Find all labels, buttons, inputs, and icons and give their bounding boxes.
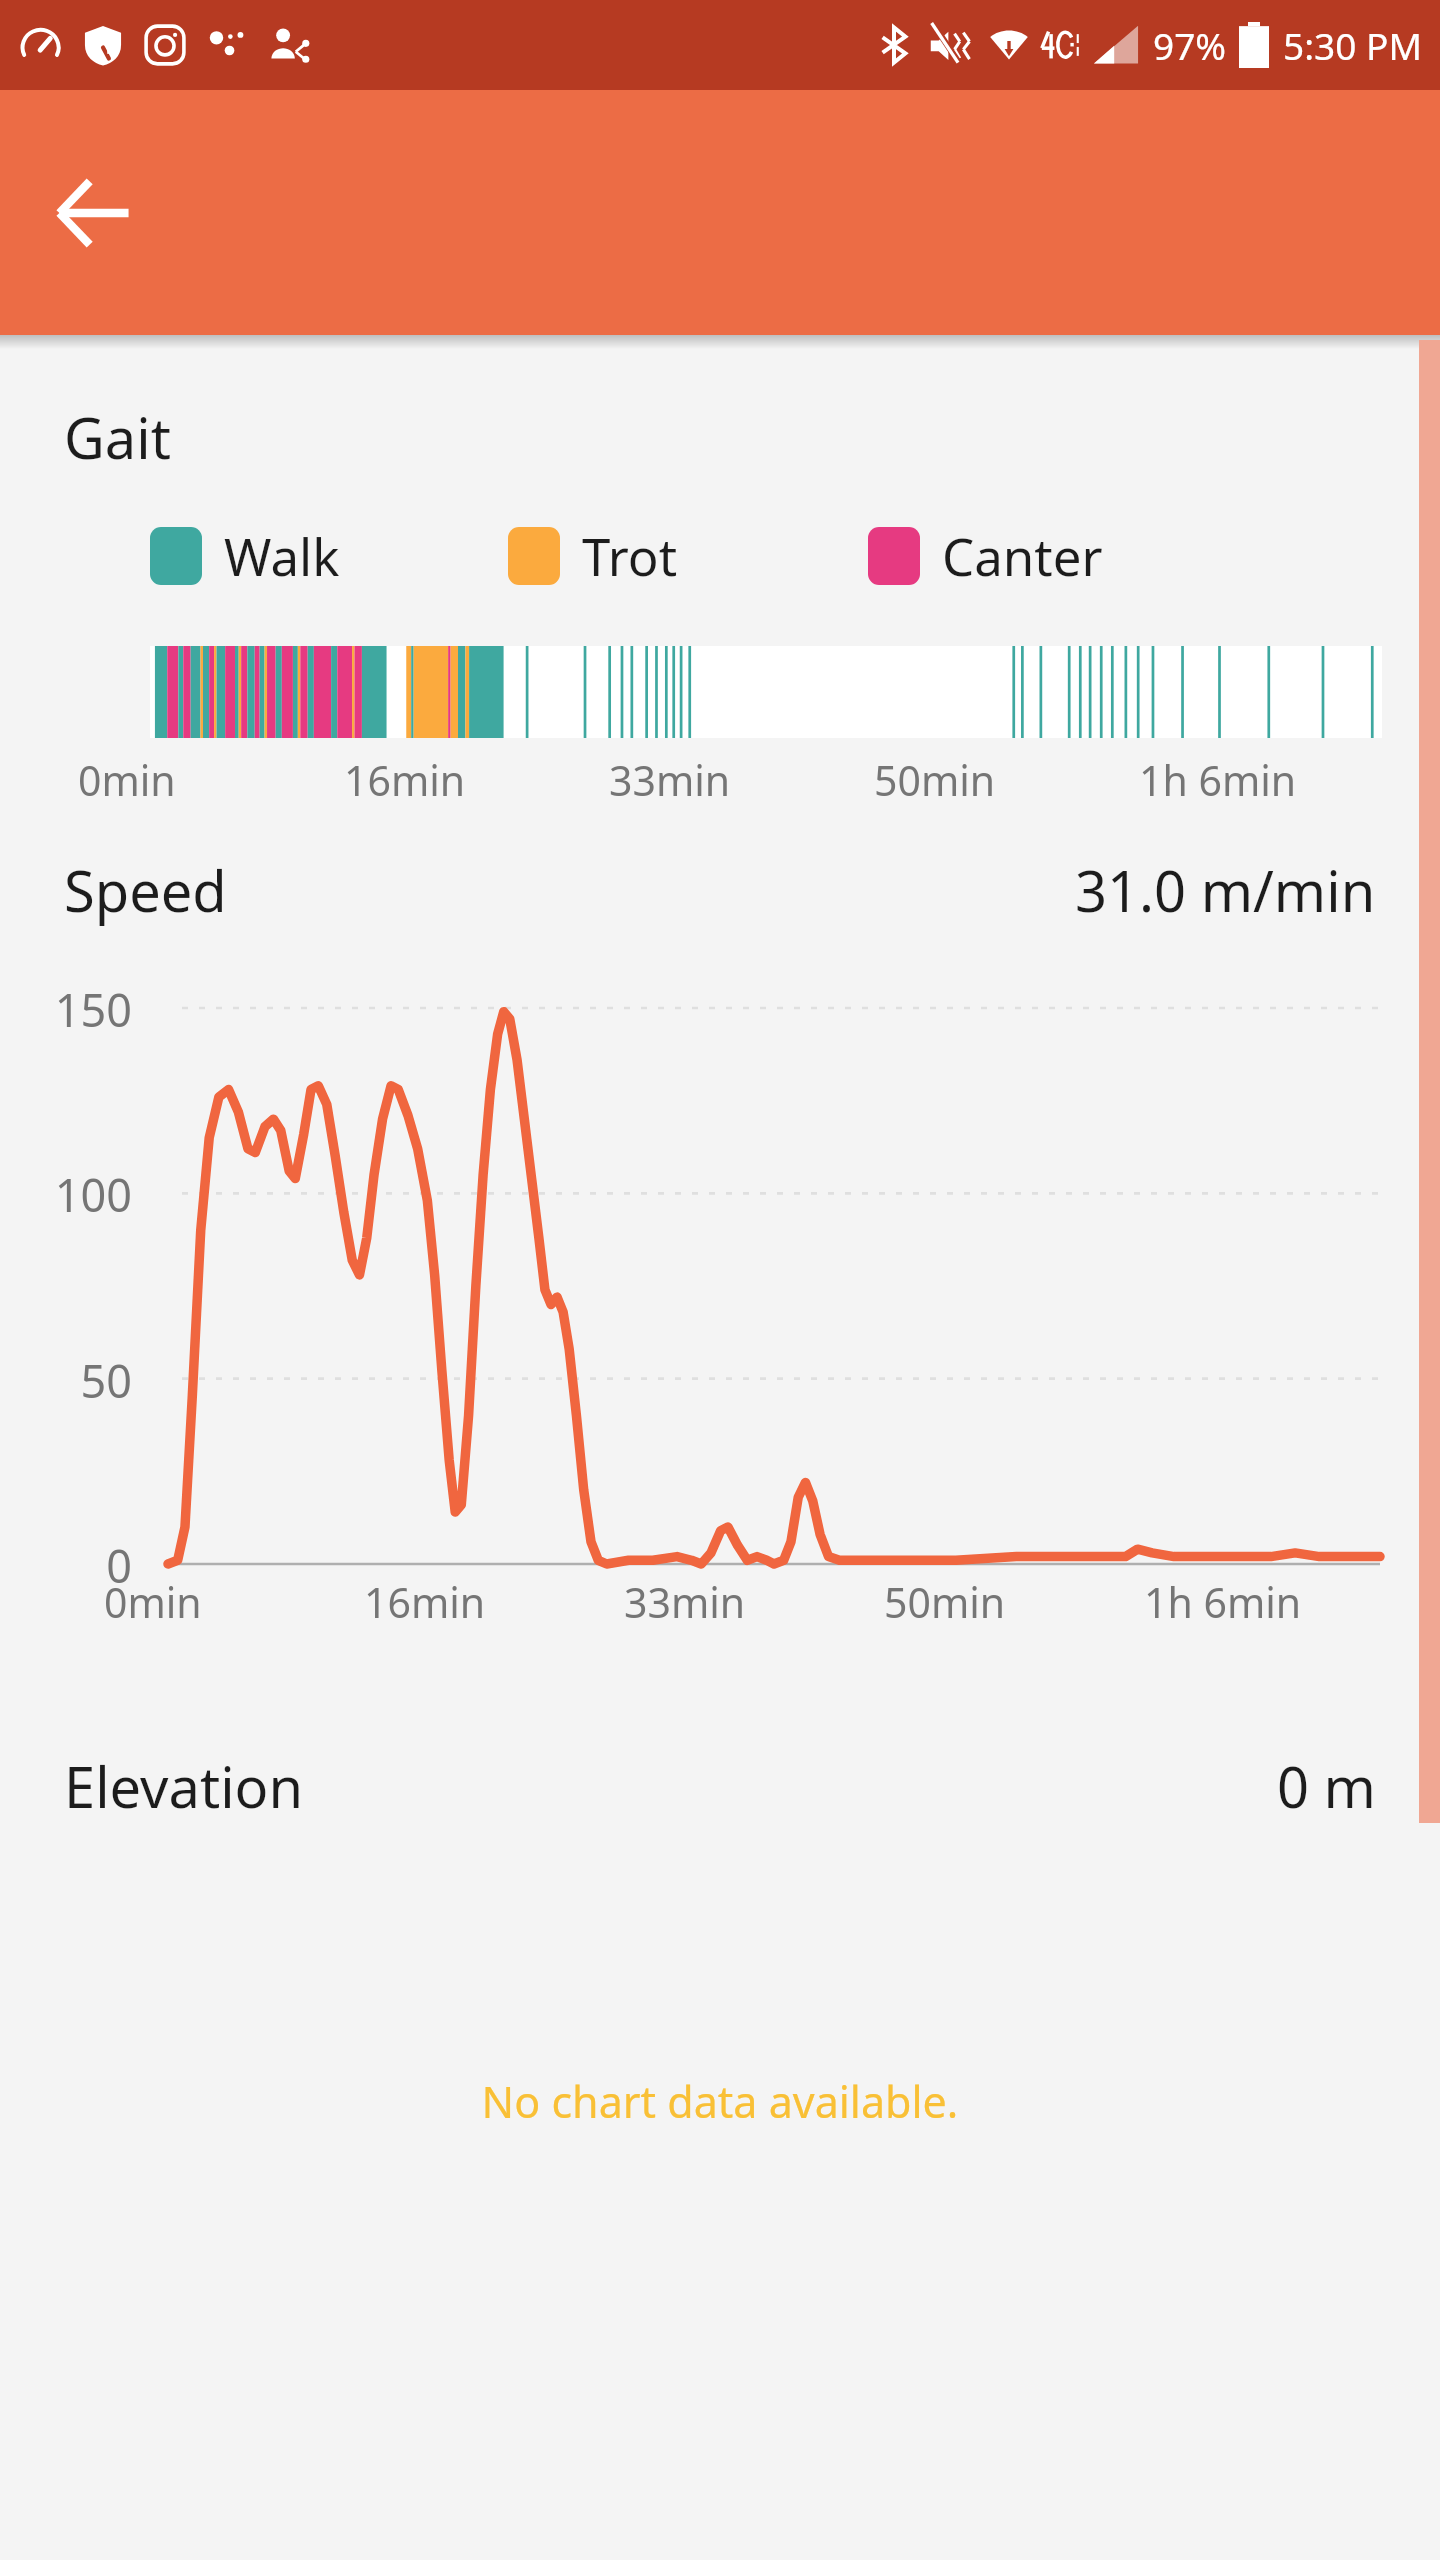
staticText: No chart data available. xyxy=(0,2072,1440,2131)
staticText: 0 xyxy=(0,1535,132,1596)
staticText: 16min xyxy=(364,1574,486,1630)
staticText: Canter xyxy=(942,521,1103,590)
button[interactable]: Walk xyxy=(150,521,340,590)
staticText: 100 xyxy=(0,1164,132,1225)
staticText: 50 xyxy=(0,1350,132,1411)
staticText: 5:30 PM xyxy=(1283,20,1422,70)
staticText: Gait xyxy=(64,399,171,475)
staticText: Elevation xyxy=(64,1748,304,1824)
staticText: 33min xyxy=(624,1574,746,1630)
staticText: 0min xyxy=(78,752,176,808)
staticText: 1h 6min xyxy=(1139,752,1297,808)
staticText: Walk xyxy=(224,521,340,590)
staticText: 0 m xyxy=(1277,1748,1376,1824)
staticText: 16min xyxy=(344,752,466,808)
staticText: 1h 6min xyxy=(1144,1574,1302,1630)
staticText: 50min xyxy=(884,1574,1006,1630)
staticText: 33min xyxy=(609,752,731,808)
staticText: 97% xyxy=(1153,20,1227,70)
staticText: Speed xyxy=(64,852,227,928)
button[interactable]: Trot xyxy=(508,521,678,590)
staticText: 31.0 m/min xyxy=(1075,852,1376,928)
button[interactable]: Canter xyxy=(868,521,1103,590)
staticText: 150 xyxy=(0,979,132,1040)
button[interactable]: Back xyxy=(42,161,146,265)
staticText: Trot xyxy=(582,521,678,590)
staticText: 0min xyxy=(104,1574,202,1630)
staticText: 50min xyxy=(874,752,996,808)
